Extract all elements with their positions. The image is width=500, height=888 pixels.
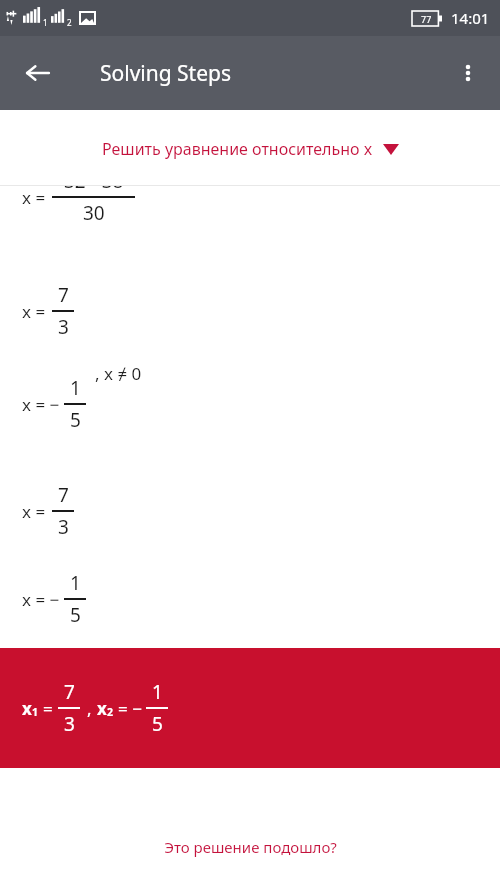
staticText: 3 <box>58 314 69 340</box>
button[interactable]: Back <box>14 49 62 97</box>
button[interactable]: Решить уравнение относительно x <box>102 138 399 160</box>
staticText: 30 <box>83 200 105 226</box>
staticText: 2 <box>107 705 114 719</box>
staticText: 1 <box>70 570 81 596</box>
staticText: 7 <box>58 282 69 308</box>
button[interactable]: More options <box>444 49 492 97</box>
staticText: , x ≠ 0 <box>95 362 142 385</box>
staticText: 1 <box>32 705 39 719</box>
staticText: 2 <box>67 17 72 28</box>
button[interactable]: Это решение подошло? <box>0 822 500 872</box>
staticText: 1 <box>43 17 48 28</box>
staticText: x = <box>22 500 46 523</box>
staticText: Решить уравнение относительно x <box>102 138 373 160</box>
staticText: 7 <box>64 679 75 705</box>
staticText: 3 <box>58 514 69 540</box>
staticText: 7 <box>58 482 69 508</box>
staticText: 5 <box>70 602 81 628</box>
staticText: 14:01 <box>451 8 490 28</box>
staticText: x = − <box>22 393 60 416</box>
staticText: Это решение подошло? <box>164 837 337 857</box>
button[interactable]: x <box>0 648 500 768</box>
staticText: 5 <box>152 711 163 737</box>
staticText: = − <box>118 697 142 720</box>
staticText: x = <box>22 300 46 323</box>
staticText: = <box>43 697 53 720</box>
staticText: 32 - 38 <box>64 186 124 194</box>
staticText: 5 <box>70 407 81 433</box>
staticText: x = <box>22 186 46 209</box>
staticText: 1 <box>152 679 163 705</box>
staticText: x <box>22 697 32 720</box>
staticText: Solving Steps <box>100 59 232 88</box>
staticText: x = − <box>22 588 60 611</box>
staticText: 3 <box>64 711 75 737</box>
staticText: , <box>87 697 92 720</box>
staticText: x <box>97 697 107 720</box>
staticText: 77 <box>421 13 432 25</box>
staticText: 1 <box>70 375 81 401</box>
